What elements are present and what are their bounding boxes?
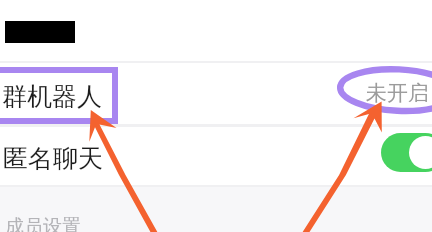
button[interactable]: Toggle anonymous chat	[381, 133, 432, 172]
button[interactable]: 匿名聊天	[0, 127, 432, 185]
staticText: 匿名聊天	[3, 143, 103, 174]
staticText: 成员设置	[5, 215, 81, 232]
staticText: 未开启	[366, 80, 429, 106]
staticText: 群机器人	[2, 81, 102, 112]
button[interactable]: 群机器人	[0, 63, 432, 124]
